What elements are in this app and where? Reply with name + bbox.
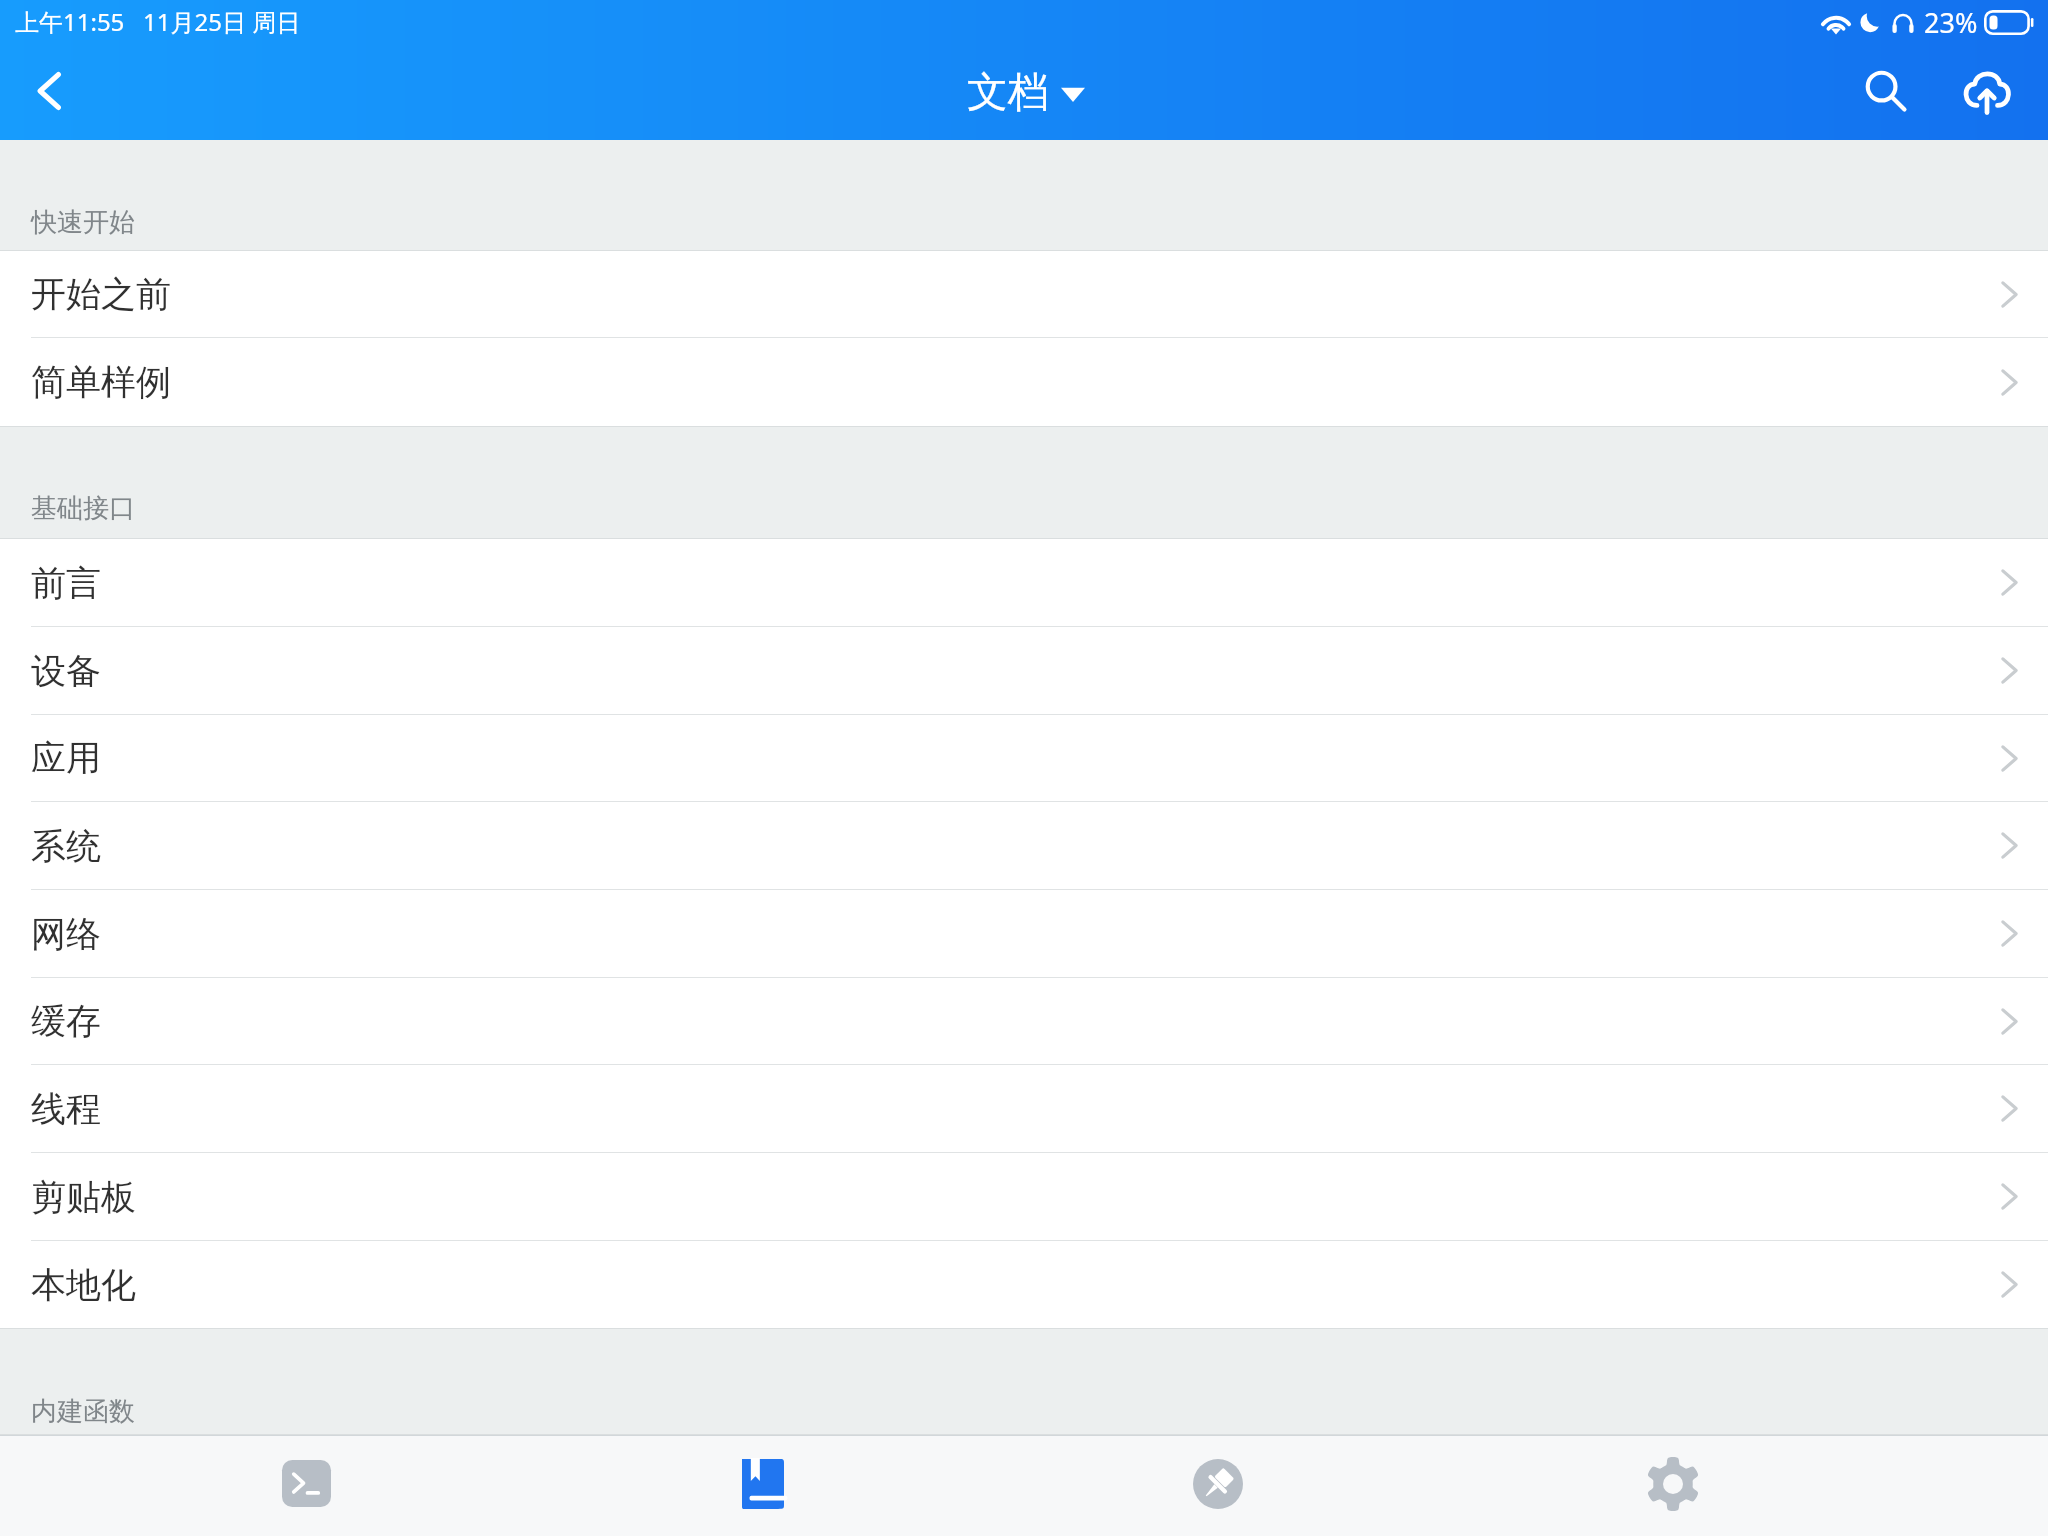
staticText: 上午11:55 11月25日 周日 [15,5,301,38]
button[interactable]: 开始之前 [0,251,2048,337]
button[interactable]: Search [1844,49,1928,133]
staticText: 前言 [31,561,101,605]
button[interactable]: 简单样例 [0,338,2048,426]
staticText: 本地化 [31,1263,136,1307]
button[interactable]: 应用 [0,715,2048,801]
staticText: 简单样例 [31,360,171,404]
button[interactable]: 前言 [0,539,2048,626]
button[interactable]: Upload to cloud [1945,49,2029,133]
staticText: 缓存 [31,999,101,1043]
button[interactable]: Documents [534,1435,990,1536]
staticText: 网络 [31,912,101,956]
button[interactable]: 文档 dropdown [957,61,1095,125]
staticText: 基础接口 [31,492,135,525]
button[interactable]: 缓存 [0,978,2048,1064]
staticText: 文档 [967,67,1049,119]
button[interactable]: 设备 [0,627,2048,714]
staticText: 系统 [31,824,101,868]
button[interactable]: Pinned [990,1435,1446,1536]
staticText: 剪贴板 [31,1175,136,1219]
button[interactable]: 剪贴板 [0,1153,2048,1240]
staticText: 快速开始 [31,206,135,239]
button[interactable]: Terminal [78,1435,534,1536]
staticText: 线程 [31,1087,101,1131]
button[interactable]: 系统 [0,802,2048,889]
staticText: 开始之前 [31,272,171,316]
staticText: 23% [1924,4,1978,41]
button[interactable]: Back [9,51,89,131]
button[interactable]: Settings [1446,1435,1902,1536]
staticText: 设备 [31,649,101,693]
staticText: 应用 [31,736,101,780]
button[interactable]: 本地化 [0,1241,2048,1328]
button[interactable]: 线程 [0,1065,2048,1152]
button[interactable]: 网络 [0,890,2048,977]
staticText: 内建函数 [31,1395,135,1428]
